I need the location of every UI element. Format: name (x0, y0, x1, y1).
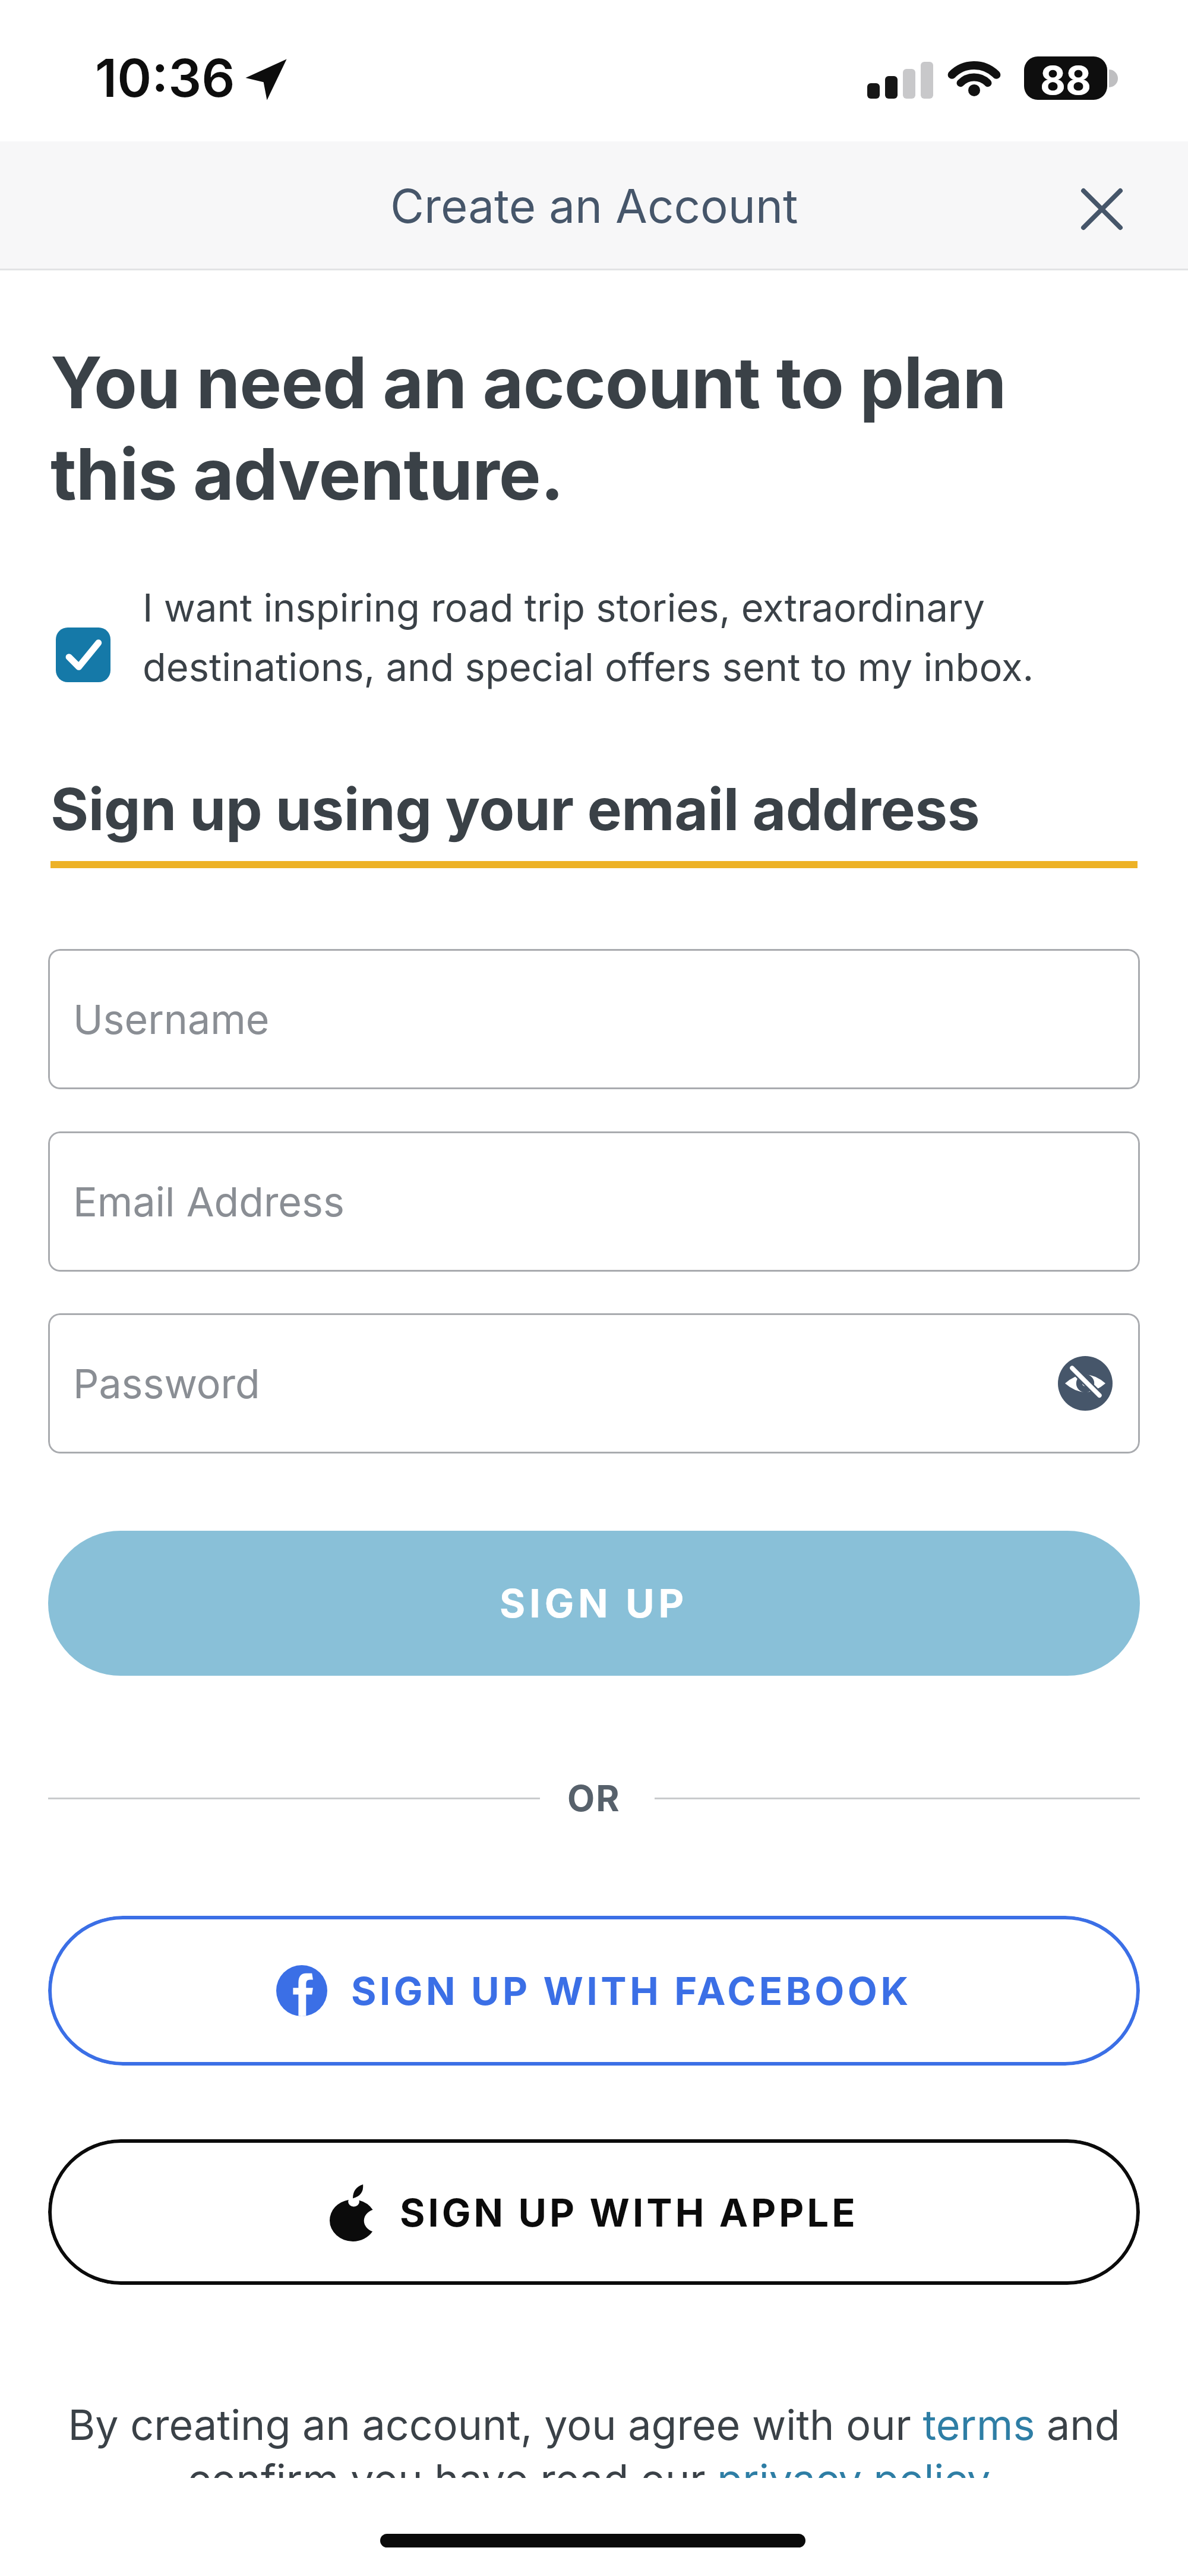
staticText: 88 (1040, 56, 1091, 100)
button[interactable] (56, 628, 110, 682)
staticText: I want inspiring road trip stories, extr… (143, 584, 1152, 690)
staticText: 10:36 (95, 46, 235, 109)
staticText: SIGN UP WITH FACEBOOK (351, 1968, 912, 2014)
button[interactable]: Password (48, 1313, 1140, 1453)
button[interactable]: SIGN UP WITH FACEBOOK (48, 1916, 1140, 2066)
staticText: By creating an account, you agree with o… (0, 2400, 1188, 2505)
staticText: Password (73, 1359, 260, 1408)
button[interactable]: Email Address (48, 1131, 1140, 1272)
staticText: Email Address (73, 1177, 345, 1226)
button[interactable]: SIGN UP (48, 1531, 1140, 1676)
button[interactable]: SIGN UP WITH APPLE (48, 2139, 1140, 2285)
staticText: SIGN UP WITH APPLE (400, 2189, 858, 2236)
button[interactable]: Username (48, 949, 1140, 1089)
staticText: SIGN UP (500, 1579, 688, 1627)
staticText: OR (567, 1777, 621, 1820)
staticText: You need an account to plan this adventu… (50, 340, 1179, 517)
button[interactable] (1057, 165, 1146, 254)
staticText: Sign up using your email address (50, 774, 980, 844)
button[interactable] (1058, 1356, 1113, 1411)
staticText: Username (73, 995, 270, 1043)
staticText: Create an Account (390, 178, 798, 234)
